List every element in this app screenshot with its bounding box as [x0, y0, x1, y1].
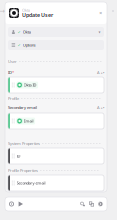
staticText: Profile	[8, 96, 19, 101]
staticText: Okta	[23, 29, 31, 35]
button[interactable]: Close	[97, 9, 104, 16]
button[interactable]: Settings	[96, 197, 105, 211]
staticText: User	[8, 59, 17, 64]
staticText: →	[0, 7, 5, 15]
staticText: ✕	[99, 11, 102, 15]
staticText: Secondary email	[16, 180, 45, 186]
staticText: +	[100, 70, 102, 75]
staticText: Email	[23, 118, 33, 124]
staticText: ▾	[103, 71, 104, 74]
button[interactable]: Run	[16, 197, 25, 211]
staticText: ✓	[17, 30, 20, 34]
button[interactable]: Insert variable	[97, 70, 104, 75]
button[interactable]: ✓	[8, 40, 104, 50]
button[interactable]: Help	[7, 197, 16, 211]
staticText: A	[97, 70, 100, 75]
staticText: Profile Properties	[8, 168, 38, 173]
button[interactable]: Insert variable	[97, 105, 104, 110]
staticText: Okta	[22, 8, 30, 13]
button[interactable]: Search	[78, 197, 87, 211]
staticText: Options	[23, 42, 36, 48]
staticText: *	[12, 70, 14, 75]
staticText: Secondary email	[8, 105, 37, 110]
staticText: System Properties	[8, 141, 40, 146]
button[interactable]: ✓	[8, 27, 104, 37]
button[interactable]: Duplicate	[87, 197, 96, 211]
staticText: ID	[16, 153, 20, 159]
staticText: Update User	[22, 11, 53, 19]
staticText: ▾	[103, 106, 104, 109]
staticText: A	[97, 105, 100, 110]
staticText: +	[100, 105, 102, 110]
staticText: ▾	[98, 30, 100, 34]
staticText: ID	[8, 70, 12, 75]
staticText: Okta ID	[23, 82, 36, 88]
staticText: ✓	[17, 43, 20, 47]
